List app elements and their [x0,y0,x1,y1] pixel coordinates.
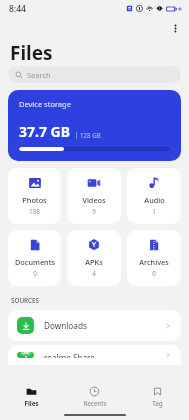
button[interactable]: Documents [8,230,61,286]
staticText: SOURCES [11,296,39,305]
staticText: Recents [83,399,107,408]
button[interactable]: APKs [67,230,121,286]
staticText: 0 [152,269,156,278]
staticText: APKs [85,257,103,267]
staticText: Videos [82,195,106,205]
button[interactable]: realme Share [8,345,181,365]
staticText: Audio [144,195,165,205]
button[interactable]: Photos [8,168,61,224]
staticText: Archives [139,257,169,267]
staticText: Downloads [44,320,164,331]
button[interactable]: Search [8,66,181,83]
button[interactable]: Recents [63,384,126,410]
staticText: 8:44 [9,3,26,15]
staticText: 4 [92,269,96,278]
staticText: 188 [29,207,40,216]
staticText: 37.7 GB [19,122,71,141]
staticText: Tag [152,399,163,408]
staticText: 0 [33,269,37,278]
button[interactable]: Device storage [8,90,181,161]
button[interactable]: Tag [126,384,189,410]
staticText: 9 [92,207,96,216]
staticText: Documents [15,257,55,267]
staticText: 1 [152,207,156,216]
staticText: realme Share [44,352,164,358]
staticText: Search [27,70,51,80]
button[interactable]: Videos [67,168,121,224]
button[interactable]: Downloads [8,310,181,341]
button[interactable]: Archives [127,230,181,286]
staticText: Files [24,399,39,408]
button[interactable]: Files [0,384,63,410]
staticText: Photos [22,195,47,205]
button[interactable]: More options [165,18,185,38]
staticText: Files [10,40,53,66]
button[interactable]: Audio [127,168,181,224]
staticText: Device storage [19,99,71,109]
staticText: 128 GB [80,131,101,139]
